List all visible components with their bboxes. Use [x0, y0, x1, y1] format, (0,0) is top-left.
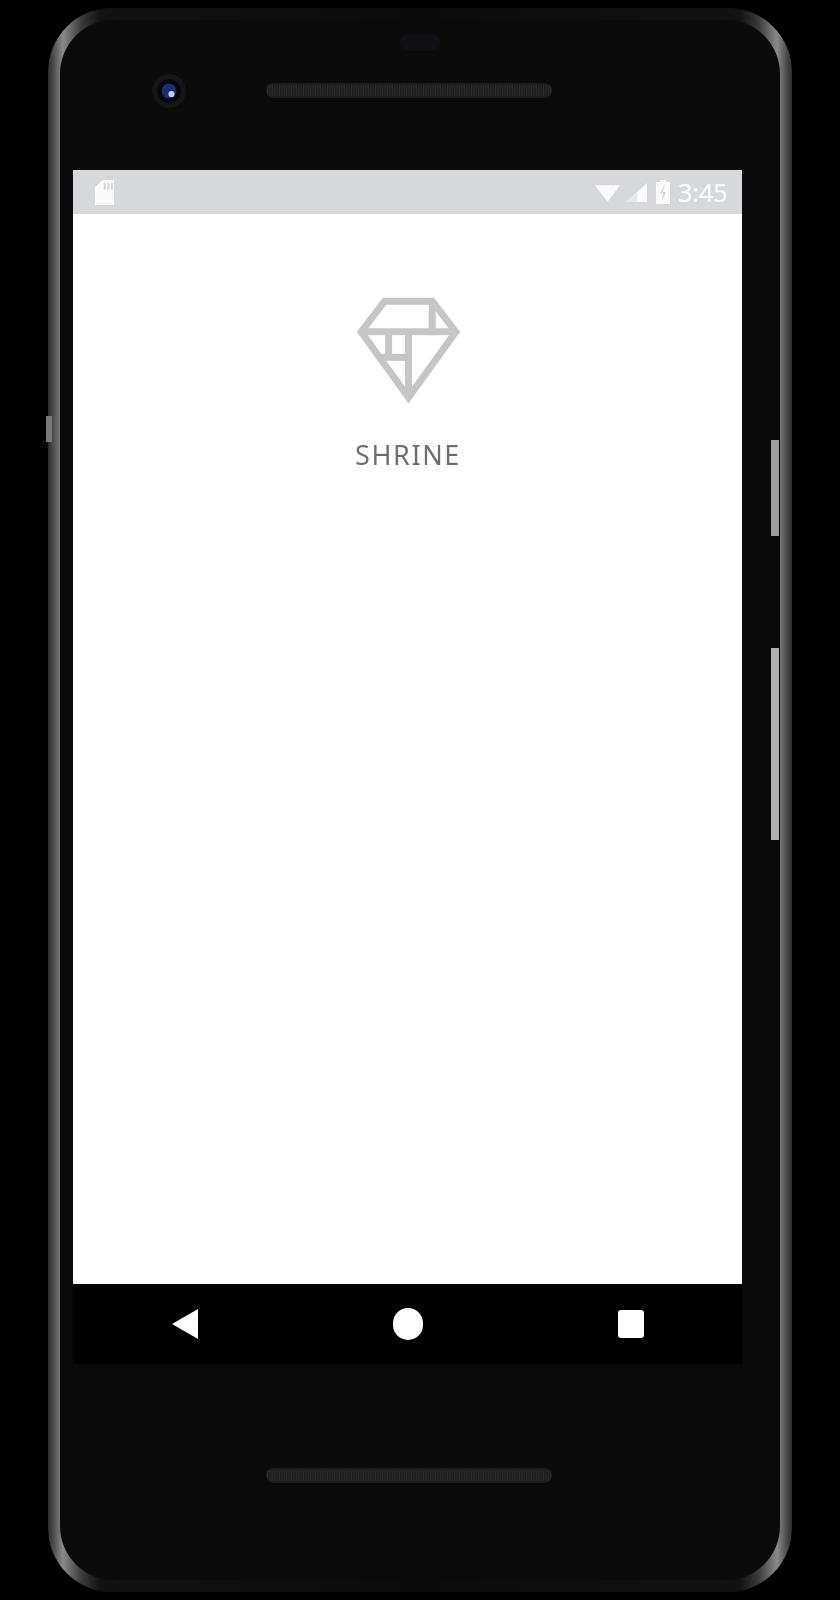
staticText: SHRINE	[355, 436, 461, 473]
button[interactable]: Back	[73, 1284, 296, 1364]
button[interactable]: Home	[296, 1284, 519, 1364]
staticText: 3:45	[678, 175, 728, 209]
button[interactable]: Recent apps	[519, 1284, 742, 1364]
